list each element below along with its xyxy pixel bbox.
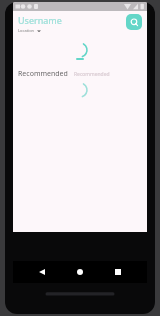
button[interactable]: Search — [126, 14, 142, 30]
button[interactable]: Location — [18, 28, 41, 33]
button[interactable]: Home — [71, 263, 89, 281]
staticText: Location — [18, 28, 35, 33]
staticText: Username — [18, 14, 62, 26]
staticText: Recommended — [74, 71, 110, 78]
button[interactable]: Back — [33, 263, 51, 281]
button[interactable]: Recents — [109, 263, 127, 281]
staticText: Recommended — [18, 69, 68, 79]
